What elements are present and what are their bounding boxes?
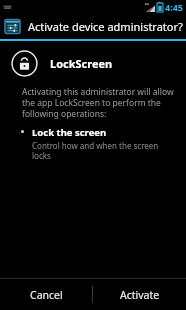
button[interactable]: Cancel — [0, 279, 92, 310]
button[interactable]: Activate — [93, 279, 186, 310]
staticText: LockScreen — [50, 56, 113, 71]
staticText: Activate device administrator? — [28, 19, 183, 34]
staticText: Activate — [120, 288, 160, 302]
staticText: Cancel — [30, 288, 63, 302]
staticText: 4:45 — [165, 1, 183, 13]
staticText: Activating this administrator will allow… — [22, 86, 176, 119]
staticText: Lock the screen — [32, 126, 107, 139]
staticText: Control how and when the screen locks — [32, 140, 176, 161]
